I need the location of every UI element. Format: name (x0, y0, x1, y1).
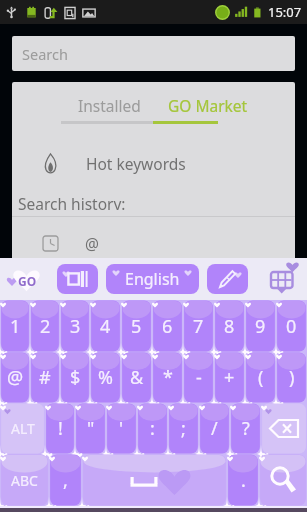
button[interactable]: ? (230, 403, 261, 454)
staticText: $ (70, 365, 81, 390)
button[interactable]: / (199, 403, 230, 454)
button[interactable]: 4 (90, 300, 121, 352)
button[interactable]: & (121, 352, 152, 403)
button[interactable]: 8 (214, 300, 245, 352)
button[interactable]: 3 (60, 300, 90, 352)
staticText: ABC (11, 471, 38, 490)
staticText: * (163, 365, 173, 390)
button[interactable]: ) (276, 352, 307, 403)
button[interactable]: 6 (152, 300, 183, 352)
button[interactable]: , (49, 454, 82, 506)
staticText: Hot keywords (86, 153, 186, 174)
button[interactable]: English (106, 264, 199, 294)
button[interactable]: @ (12, 217, 295, 270)
button[interactable]: ' (106, 403, 137, 454)
staticText: @ (85, 233, 99, 254)
staticText: 9 (255, 314, 266, 339)
staticText: 1 (10, 314, 21, 339)
button[interactable]: : (137, 403, 168, 454)
staticText: 3 (70, 314, 81, 339)
staticText: % (98, 365, 113, 390)
staticText: / (211, 416, 218, 441)
button[interactable]: Search (12, 36, 295, 71)
staticText: English (125, 268, 180, 290)
staticText: GO (18, 273, 37, 289)
button[interactable]: ALT (0, 403, 45, 454)
button[interactable]: GO Market (168, 95, 248, 116)
button[interactable]: ; (168, 403, 199, 454)
staticText: ( (258, 365, 264, 390)
staticText: 5 (131, 314, 142, 339)
staticText: 8 (224, 314, 235, 339)
button[interactable]: 7 (183, 300, 214, 352)
button[interactable]: Backspace (261, 403, 307, 454)
button[interactable]: @ (0, 352, 30, 403)
staticText: ? (242, 416, 250, 441)
button[interactable]: . (227, 454, 259, 506)
staticText: ; (181, 416, 186, 441)
staticText: . (241, 468, 246, 493)
staticText: 4 (100, 314, 111, 339)
button[interactable]: ! (45, 403, 75, 454)
button[interactable]: Search (259, 454, 307, 506)
staticText: , (63, 468, 68, 493)
staticText: 15:07 (268, 3, 302, 21)
button[interactable]: 9 (245, 300, 276, 352)
staticText: GO Market (168, 95, 248, 116)
button[interactable]: % (90, 352, 121, 403)
staticText: 0 (286, 314, 297, 339)
button[interactable]: 2 (30, 300, 60, 352)
staticText: + (224, 365, 235, 390)
staticText: Search history: (18, 193, 126, 210)
staticText: Installed (78, 95, 141, 116)
button[interactable]: Keyboard layout (57, 264, 98, 294)
staticText: ) (289, 365, 295, 390)
staticText: # (39, 365, 51, 390)
button[interactable]: " (75, 403, 106, 454)
button[interactable]: $ (60, 352, 90, 403)
button[interactable]: + (214, 352, 245, 403)
staticText: : (150, 416, 155, 441)
button[interactable]: Installed (78, 95, 141, 116)
button[interactable]: GO Keyboard settings (0, 262, 44, 296)
button[interactable]: ABC (0, 454, 49, 506)
staticText: " (87, 416, 95, 441)
button[interactable]: * (152, 352, 183, 403)
staticText: ' (119, 416, 124, 441)
button[interactable]: # (30, 352, 60, 403)
button[interactable]: Hot keywords (12, 127, 295, 193)
staticText: 7 (193, 314, 204, 339)
staticText: ALT (11, 419, 35, 438)
staticText: Search (22, 44, 68, 64)
button[interactable]: 5 (121, 300, 152, 352)
button[interactable]: Emoji (262, 258, 307, 300)
staticText: - (196, 365, 202, 390)
button[interactable]: - (183, 352, 214, 403)
staticText: 6 (162, 314, 173, 339)
button[interactable]: 0 (276, 300, 307, 352)
button[interactable]: Handwriting (207, 264, 248, 294)
staticText: 2 (40, 314, 51, 339)
staticText: & (130, 365, 144, 390)
button[interactable]: Space (82, 454, 227, 506)
button[interactable]: ( (245, 352, 276, 403)
staticText: @ (7, 365, 24, 390)
button[interactable]: 1 (0, 300, 30, 352)
staticText: ! (58, 416, 63, 441)
